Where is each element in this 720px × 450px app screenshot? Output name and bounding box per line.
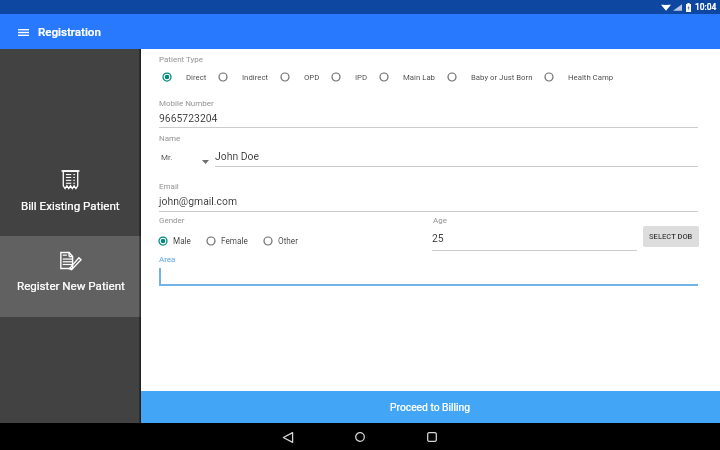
staticText: Name [159, 134, 181, 143]
staticText: Age [433, 216, 447, 225]
button[interactable]: SELECT DOB [643, 226, 699, 247]
button[interactable]: Baby or Just Born [447, 72, 533, 82]
staticText: John Doe [215, 150, 259, 162]
button[interactable]: Back [275, 424, 301, 450]
staticText: Email [159, 182, 179, 191]
staticText: Mr. [161, 153, 173, 162]
button[interactable]: Recent apps [419, 424, 445, 450]
staticText: Other [278, 236, 298, 246]
button[interactable]: Main Lab [379, 72, 436, 82]
staticText: Baby or Just Born [471, 73, 533, 82]
staticText: Gender [159, 216, 185, 225]
staticText: Main Lab [403, 73, 436, 82]
button[interactable]: Male [158, 236, 191, 246]
staticText: Register New Patient [17, 279, 125, 293]
button[interactable]: Indirect [218, 72, 269, 82]
staticText: Registration [38, 25, 101, 39]
staticText: Bill Existing Patient [21, 199, 120, 213]
button[interactable]: Female [206, 236, 248, 246]
staticText: SELECT DOB [649, 232, 693, 241]
staticText: Patient Type [159, 55, 204, 64]
staticText: 25 [432, 232, 444, 244]
button[interactable]: Health Camp [544, 72, 614, 82]
staticText: Female [221, 236, 248, 246]
button[interactable]: OPD [280, 72, 320, 82]
staticText: Male [173, 236, 191, 246]
staticText: Area [159, 255, 176, 264]
button[interactable]: Home [347, 424, 373, 450]
button[interactable]: Other [263, 236, 298, 246]
button[interactable]: Open navigation menu [6, 15, 40, 49]
staticText: Indirect [242, 73, 269, 82]
button[interactable]: IPD [331, 72, 368, 82]
button[interactable]: Bill Existing Patient [0, 155, 141, 236]
button[interactable]: Register New Patient [0, 236, 141, 317]
staticText: Health Camp [568, 73, 614, 82]
staticText: OPD [304, 73, 320, 82]
staticText: Direct [186, 73, 207, 82]
staticText: Mobile Number [159, 99, 214, 108]
button[interactable]: Direct [162, 72, 207, 82]
button[interactable]: Proceed to Billing [141, 391, 720, 423]
staticText: Proceed to Billing [390, 401, 471, 413]
staticText: 10:04 [695, 2, 717, 12]
staticText: john@gmail.com [159, 195, 238, 207]
staticText: IPD [355, 73, 368, 82]
staticText: 9665723204 [159, 112, 218, 124]
